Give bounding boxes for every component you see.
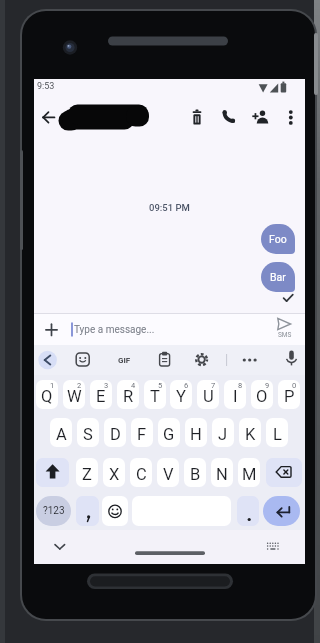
button[interactable] [74,351,91,368]
button[interactable] [272,316,296,340]
button[interactable] [263,496,300,526]
button[interactable]: M [238,458,260,487]
button[interactable]: P [278,380,300,409]
button[interactable]: Y [170,380,192,409]
button[interactable] [50,539,66,553]
staticText: I [233,387,238,406]
staticText: 8 [238,381,243,390]
button[interactable] [44,322,60,338]
staticText: L [273,425,282,444]
button[interactable]: B [184,458,206,487]
button[interactable] [252,108,270,126]
button[interactable]: W [63,380,85,409]
button[interactable] [237,496,259,526]
button[interactable]: X [103,458,125,487]
staticText: X [109,465,120,484]
button[interactable]: E [90,380,112,409]
button[interactable] [34,313,305,345]
button[interactable] [36,458,69,487]
staticText: Z [82,465,92,484]
staticText: 5 [158,381,163,390]
button[interactable] [194,351,210,368]
button[interactable]: J [212,418,234,447]
button[interactable]: Foo [261,224,295,254]
staticText: GIF [118,356,131,365]
button[interactable]: Z [76,458,98,487]
staticText: K [245,425,256,444]
staticText: 7 [211,381,216,390]
staticText: N [216,465,228,484]
staticText: V [163,465,174,484]
staticText: 4 [131,381,136,390]
staticText: P [284,387,295,406]
button[interactable] [240,352,258,368]
button[interactable]: R [117,380,139,409]
button[interactable]: L [266,418,288,447]
button[interactable]: T [144,380,166,409]
staticText: 0 [292,381,297,390]
staticText: Foo [269,233,287,245]
staticText: J [218,425,228,444]
staticText: 2 [77,381,82,390]
staticText: H [190,425,202,444]
button[interactable] [40,108,58,126]
button[interactable]: G [158,418,180,447]
staticText: O [256,387,268,406]
staticText: F [137,425,147,444]
staticText: Y [176,387,186,406]
staticText: 9:53 [37,81,55,92]
button[interactable]: Bar [261,262,295,292]
staticText: 1 [50,381,55,390]
button[interactable] [220,108,238,126]
button[interactable]: I [224,380,246,409]
button[interactable] [188,108,206,126]
staticText: 6 [184,381,189,390]
button[interactable]: K [239,418,261,447]
staticText: Type a message... [74,324,155,336]
button[interactable] [284,349,300,368]
button[interactable]: A [50,418,72,447]
staticText: G [163,425,175,444]
staticText: M [242,465,257,484]
button[interactable] [266,458,302,487]
staticText: E [96,387,106,406]
staticText: Q [41,387,53,406]
button[interactable]: S [77,418,99,447]
button[interactable]: V [157,458,179,487]
button[interactable] [283,108,299,126]
staticText: 09:51 PM [149,202,190,213]
button[interactable]: GIF [112,352,136,368]
staticText: SMS [278,331,292,339]
button[interactable]: C [130,458,152,487]
button[interactable] [76,496,99,526]
staticText: U [203,387,214,406]
button[interactable]: H [185,418,207,447]
staticText: ?123 [43,505,65,517]
staticText: C [136,465,147,484]
button[interactable]: U [197,380,219,409]
staticText: D [110,425,121,444]
staticText: A [56,425,67,444]
staticText: T [150,387,160,406]
button[interactable]: Q [36,380,58,409]
staticText: 3 [104,381,109,390]
button[interactable] [102,496,128,526]
button[interactable] [38,351,57,370]
staticText: R [123,387,134,406]
staticText: Bar [270,271,286,283]
staticText: B [190,465,201,484]
staticText: 9 [265,381,270,390]
button[interactable]: O [251,380,273,409]
staticText: S [83,425,93,444]
button[interactable]: ?123 [36,496,71,526]
button[interactable] [157,351,172,368]
staticText: W [67,387,82,406]
button[interactable] [263,539,282,554]
button[interactable]: N [211,458,233,487]
button[interactable]: F [131,418,153,447]
button[interactable]: D [104,418,126,447]
